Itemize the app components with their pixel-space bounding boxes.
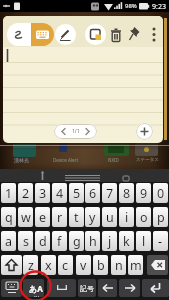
button[interactable]: l (136, 231, 151, 251)
staticText: 5 (73, 185, 81, 202)
button[interactable]: j (102, 231, 117, 251)
button[interactable]: 9 (136, 183, 151, 203)
staticText: 9 (140, 185, 148, 202)
button[interactable]: m (128, 255, 143, 275)
staticText: i (125, 209, 129, 226)
button[interactable]: a (1, 231, 16, 251)
staticText: h (89, 233, 97, 250)
button[interactable]: k (119, 231, 134, 251)
staticText: 9:23 (152, 2, 166, 12)
staticText: z (28, 257, 34, 274)
button[interactable]: g (69, 231, 84, 251)
button[interactable] (85, 24, 106, 45)
button[interactable]: e (35, 207, 50, 227)
button[interactable]: 2 (18, 183, 33, 203)
staticText: 8 (123, 185, 131, 202)
button[interactable] (104, 143, 129, 156)
button[interactable] (47, 279, 76, 297)
button[interactable]: 0 (153, 183, 168, 203)
staticText: w (21, 209, 31, 226)
button[interactable]: t (69, 207, 84, 227)
button[interactable]: 7 (102, 183, 117, 203)
button[interactable] (31, 23, 54, 46)
staticText: v (80, 257, 87, 274)
button[interactable] (13, 144, 36, 157)
button[interactable] (98, 279, 117, 297)
button[interactable]: n (111, 255, 126, 275)
staticText: NXID (108, 157, 119, 163)
button[interactable]: d (35, 231, 50, 251)
staticText: ステータス (136, 157, 159, 163)
button[interactable] (128, 24, 142, 45)
staticText: - (158, 233, 163, 250)
staticText: 1 (5, 185, 13, 202)
staticText: f (57, 233, 62, 250)
button[interactable] (135, 143, 158, 156)
button[interactable] (136, 123, 153, 140)
button[interactable]: w (18, 207, 33, 227)
button[interactable]: v (76, 255, 91, 275)
button[interactable] (147, 24, 161, 45)
button[interactable]: 記号 (78, 279, 96, 297)
staticText: 記号 (80, 284, 94, 293)
button[interactable]: c (58, 255, 73, 275)
staticText: m (130, 257, 142, 274)
button[interactable]: p (153, 207, 168, 227)
staticText: q (5, 209, 13, 226)
staticText: o (140, 209, 148, 226)
button[interactable] (7, 23, 31, 46)
staticText: 7 (106, 185, 114, 202)
button[interactable]: u (102, 207, 117, 227)
button[interactable]: s (18, 231, 33, 251)
staticText: r (57, 209, 63, 226)
button[interactable] (142, 279, 169, 297)
button[interactable]: 6 (85, 183, 100, 203)
staticText: 4 (56, 185, 64, 202)
button[interactable] (109, 24, 123, 45)
button[interactable]: 1 (1, 183, 16, 203)
button[interactable]: 8 (119, 183, 134, 203)
button[interactable]: 5 (69, 183, 84, 203)
button[interactable]: y (85, 207, 100, 227)
button[interactable]: o (136, 207, 151, 227)
staticText: d (39, 233, 47, 250)
staticText: x (45, 257, 52, 274)
button[interactable]: - (153, 231, 168, 251)
staticText: 1/1 (72, 128, 80, 135)
button[interactable]: r (52, 207, 67, 227)
button[interactable]: f (52, 231, 67, 251)
button[interactable]: x (41, 255, 56, 275)
button[interactable]: 4 (52, 183, 67, 203)
button[interactable] (119, 279, 140, 297)
staticText: 98% (125, 2, 137, 10)
button[interactable] (1, 255, 22, 275)
button[interactable] (1, 279, 22, 297)
button[interactable]: i (119, 207, 134, 227)
button[interactable] (0, 169, 169, 182)
staticText: 2 (22, 185, 30, 202)
staticText: g (73, 233, 81, 250)
staticText: a (5, 233, 13, 250)
staticText: p (157, 209, 165, 226)
staticText: Device Alert (53, 157, 79, 163)
button[interactable]: 1/1 (54, 124, 97, 139)
button[interactable]: あA (23, 279, 44, 297)
staticText: ... (34, 290, 40, 297)
staticText: u (106, 209, 114, 226)
button[interactable]: b (93, 255, 108, 275)
staticText: 3 (39, 185, 47, 202)
staticText: c (62, 257, 69, 274)
button[interactable] (147, 255, 168, 275)
staticText: 0 (157, 185, 165, 202)
button[interactable]: q (1, 207, 16, 227)
staticText: 6 (89, 185, 97, 202)
button[interactable]: h (85, 231, 100, 251)
button[interactable]: z (23, 255, 38, 275)
staticText: t (74, 209, 79, 226)
staticText: l (142, 233, 146, 250)
button[interactable] (55, 24, 76, 45)
button[interactable]: 3 (35, 183, 50, 203)
staticText: k (123, 233, 130, 250)
staticText: n (115, 257, 123, 274)
staticText: あA (29, 283, 43, 294)
